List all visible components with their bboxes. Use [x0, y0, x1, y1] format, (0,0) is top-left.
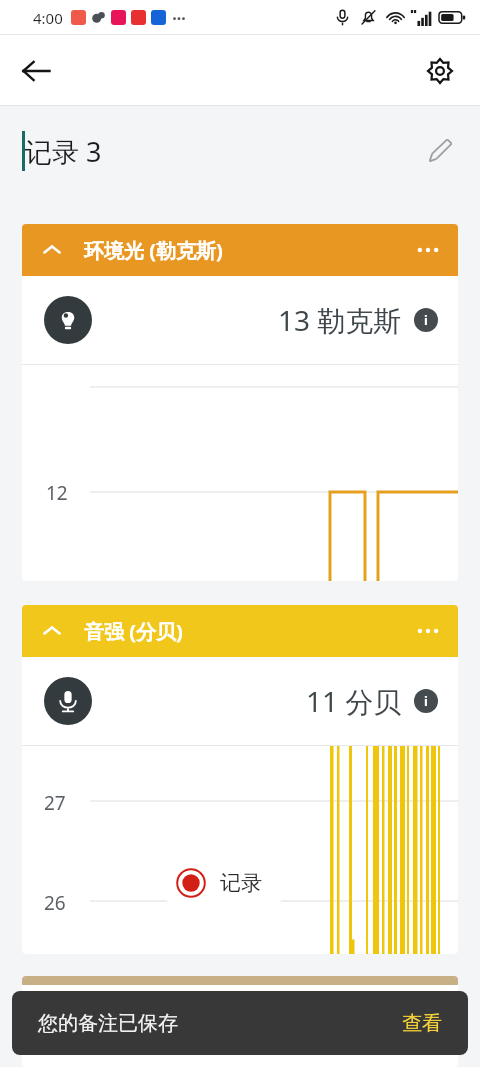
staticText: 记录 3 [25, 133, 102, 170]
staticText: i [424, 692, 428, 710]
staticText: 环境光 (勒克斯) [84, 237, 223, 264]
button[interactable]: Settings [414, 45, 466, 97]
staticText: 4:00 [33, 8, 63, 28]
button[interactable]: Info [414, 689, 438, 713]
button[interactable]: Edit title [416, 127, 464, 175]
other: More options [416, 619, 440, 643]
other: Collapse [42, 621, 62, 641]
staticText: 27 [44, 790, 66, 816]
other: Collapse [42, 240, 62, 260]
other: Microphone [334, 9, 351, 26]
staticText: 13 勒克斯 [278, 301, 402, 339]
button[interactable]: Info [414, 308, 438, 332]
staticText: 您的备注已保存 [38, 1011, 178, 1036]
staticText: 记录 [220, 870, 262, 896]
staticText: 11 分贝 [306, 682, 402, 720]
other: Silent mode [360, 9, 377, 26]
staticText: 查看 [402, 1011, 442, 1036]
staticText: 12 [46, 480, 68, 506]
other: Wi-Fi [386, 8, 405, 27]
other: Battery [439, 10, 466, 25]
staticText: i [424, 311, 428, 329]
button[interactable]: Back [10, 45, 62, 97]
staticText: 音强 (分贝) [84, 618, 183, 645]
button[interactable]: 您的备注已保存 [12, 991, 468, 1055]
button[interactable]: Collapse [22, 224, 458, 276]
other: More options [416, 238, 440, 262]
button[interactable]: Collapse [22, 605, 458, 657]
staticText: 26 [44, 890, 66, 916]
button[interactable]: 查看 [402, 1011, 442, 1036]
button[interactable]: 记录 [160, 856, 288, 910]
